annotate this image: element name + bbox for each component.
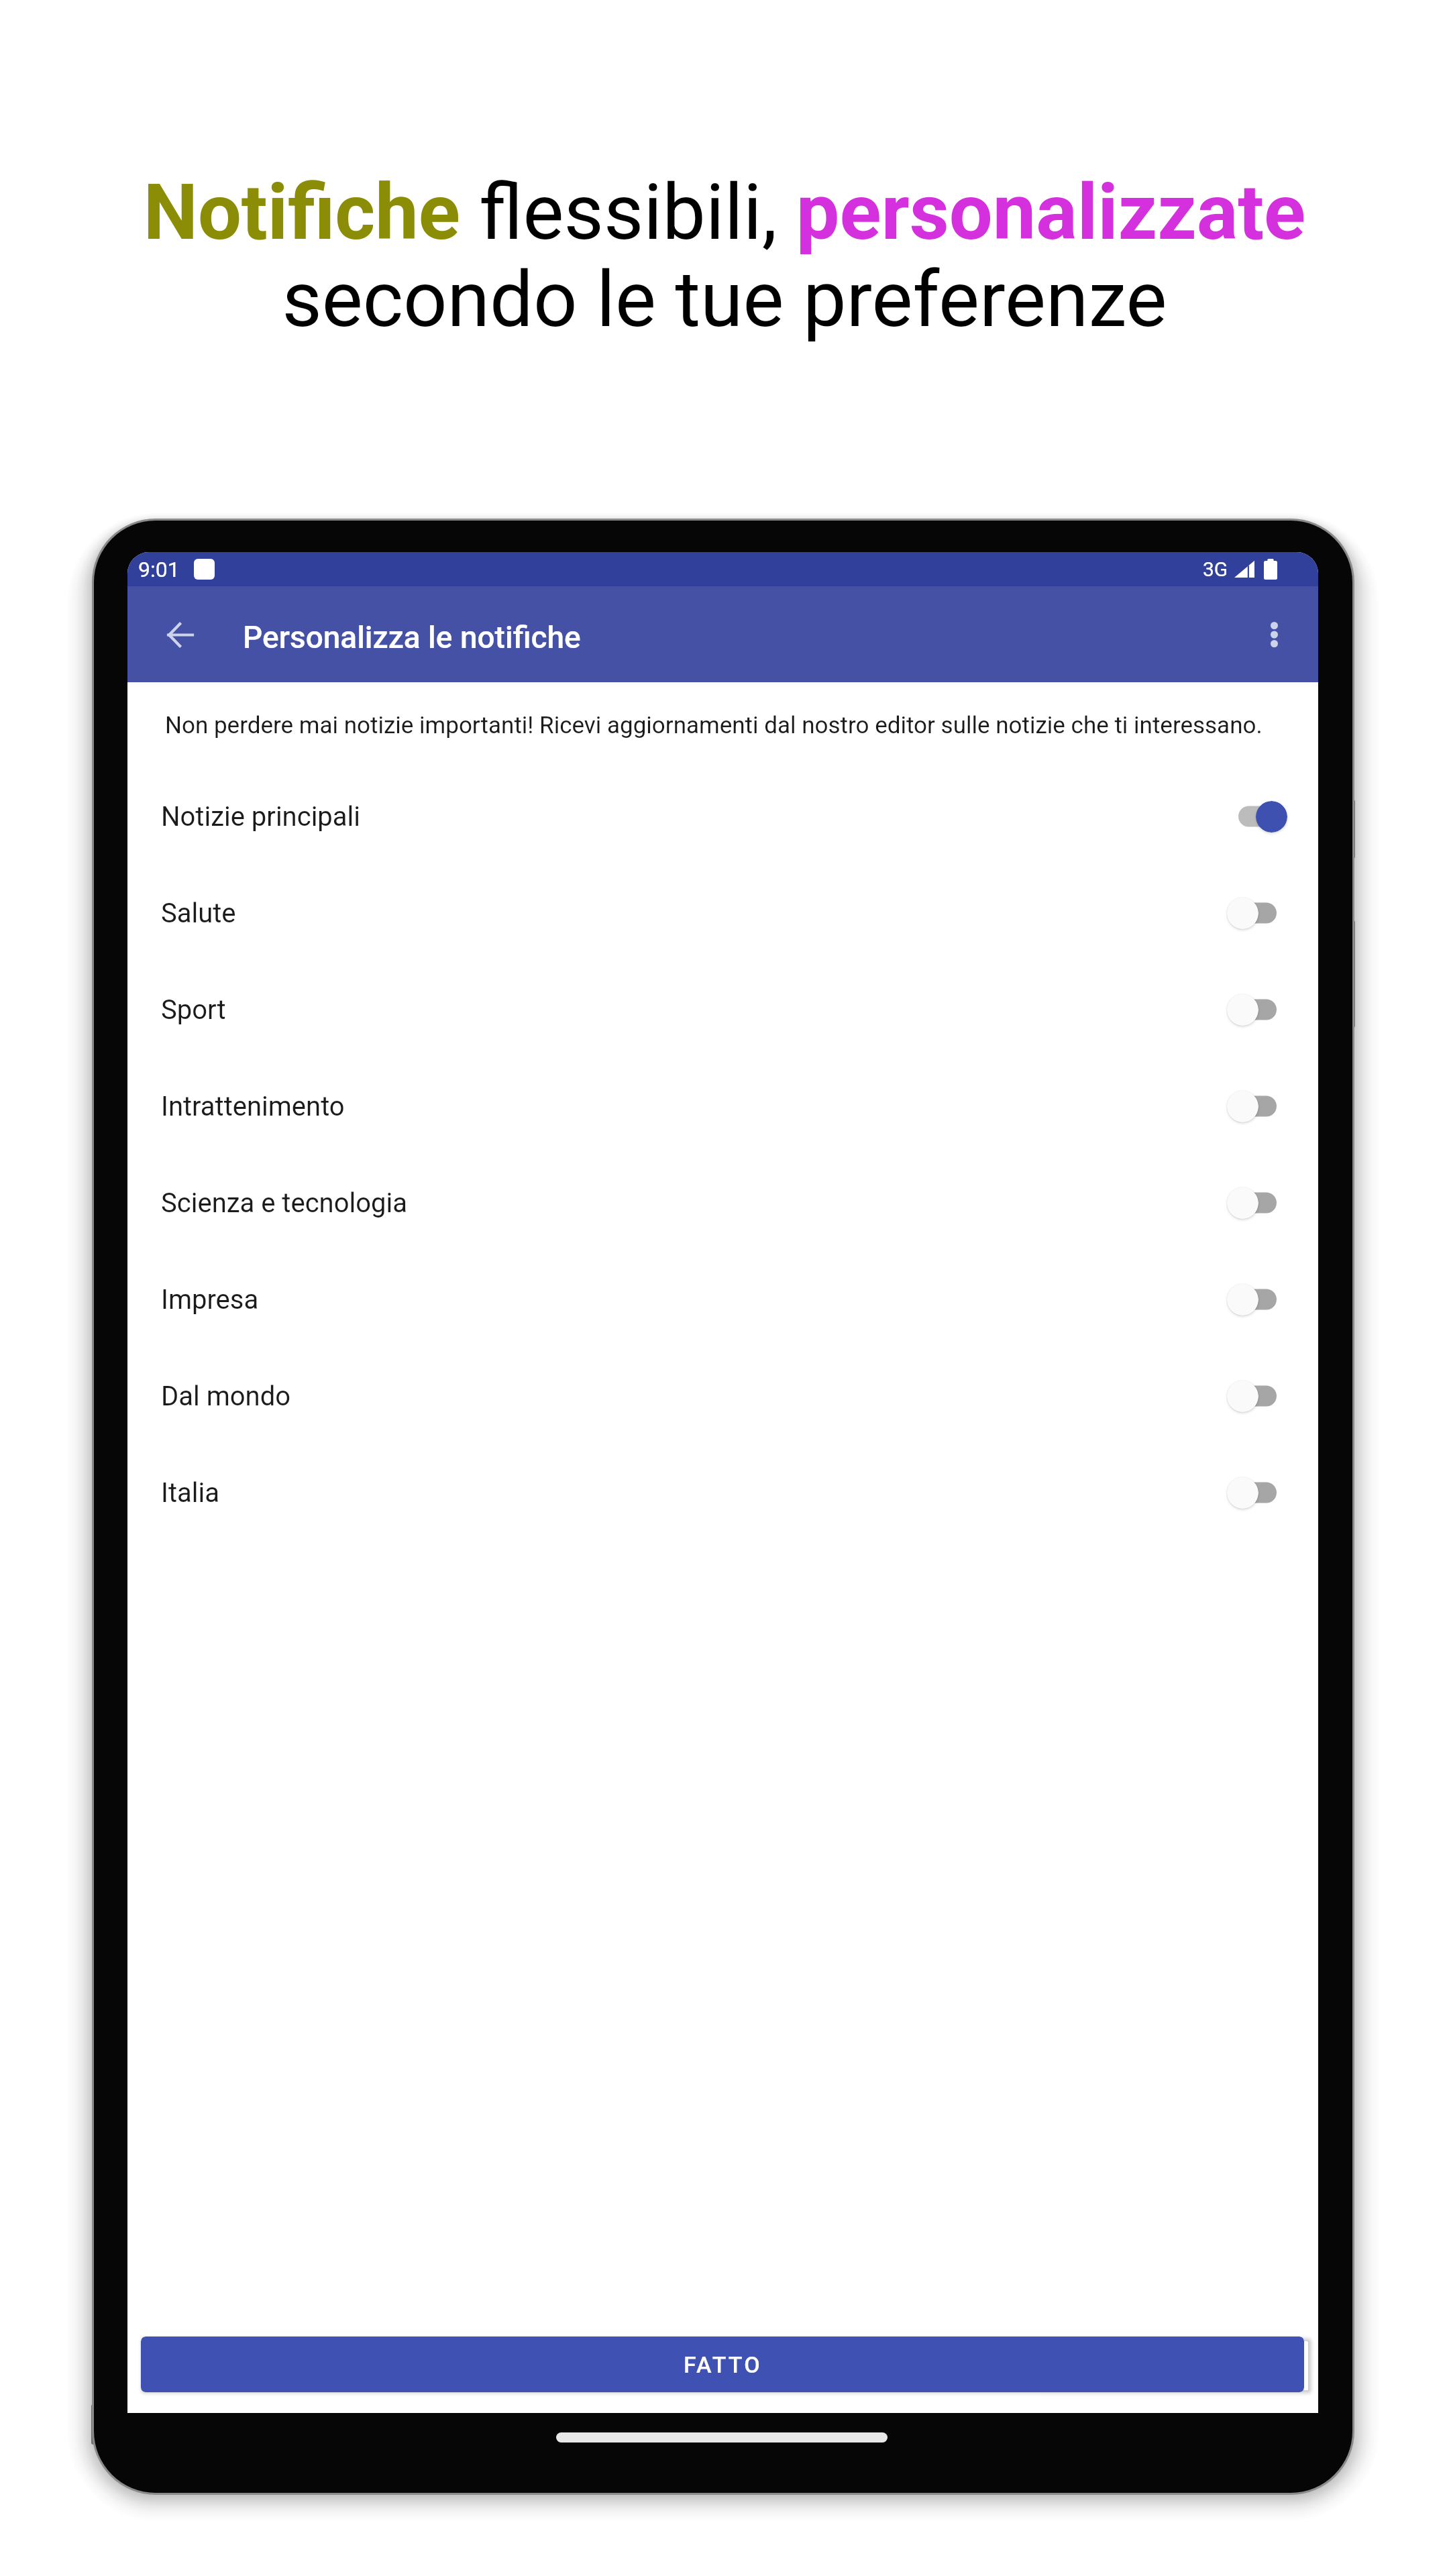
button[interactable]: More options <box>1242 602 1306 667</box>
button[interactable]: Dal mondo <box>127 1348 1318 1444</box>
staticText: 9:01 <box>138 557 180 582</box>
staticText: FATTO <box>684 2351 762 2378</box>
staticText: Intrattenimento <box>161 1091 345 1122</box>
staticText: Non perdere mai notizie importanti! Rice… <box>165 712 1263 739</box>
staticText: Impresa <box>161 1284 259 1316</box>
button[interactable]: Scienza e tecnologia <box>127 1155 1318 1251</box>
staticText: Notifiche flessibili, personalizzate sec… <box>80 167 1368 345</box>
button[interactable]: Impresa <box>127 1251 1318 1348</box>
staticText: Personalizza le notifiche <box>243 619 581 655</box>
staticText: 3G <box>1203 557 1228 581</box>
staticText: Salute <box>161 898 236 929</box>
button[interactable]: Intrattenimento <box>127 1058 1318 1155</box>
button[interactable]: Sport <box>127 961 1318 1058</box>
button[interactable]: Notizie principali <box>127 768 1318 865</box>
button[interactable]: Back <box>148 602 212 667</box>
button[interactable]: FATTO <box>141 2337 1304 2392</box>
staticText: Notizie principali <box>161 801 361 833</box>
staticText: Scienza e tecnologia <box>161 1187 407 1219</box>
staticText: Dal mondo <box>161 1381 291 1412</box>
button[interactable]: Salute <box>127 865 1318 961</box>
staticText: Sport <box>161 994 226 1026</box>
button[interactable]: Italia <box>127 1444 1318 1541</box>
staticText: Italia <box>161 1477 219 1509</box>
